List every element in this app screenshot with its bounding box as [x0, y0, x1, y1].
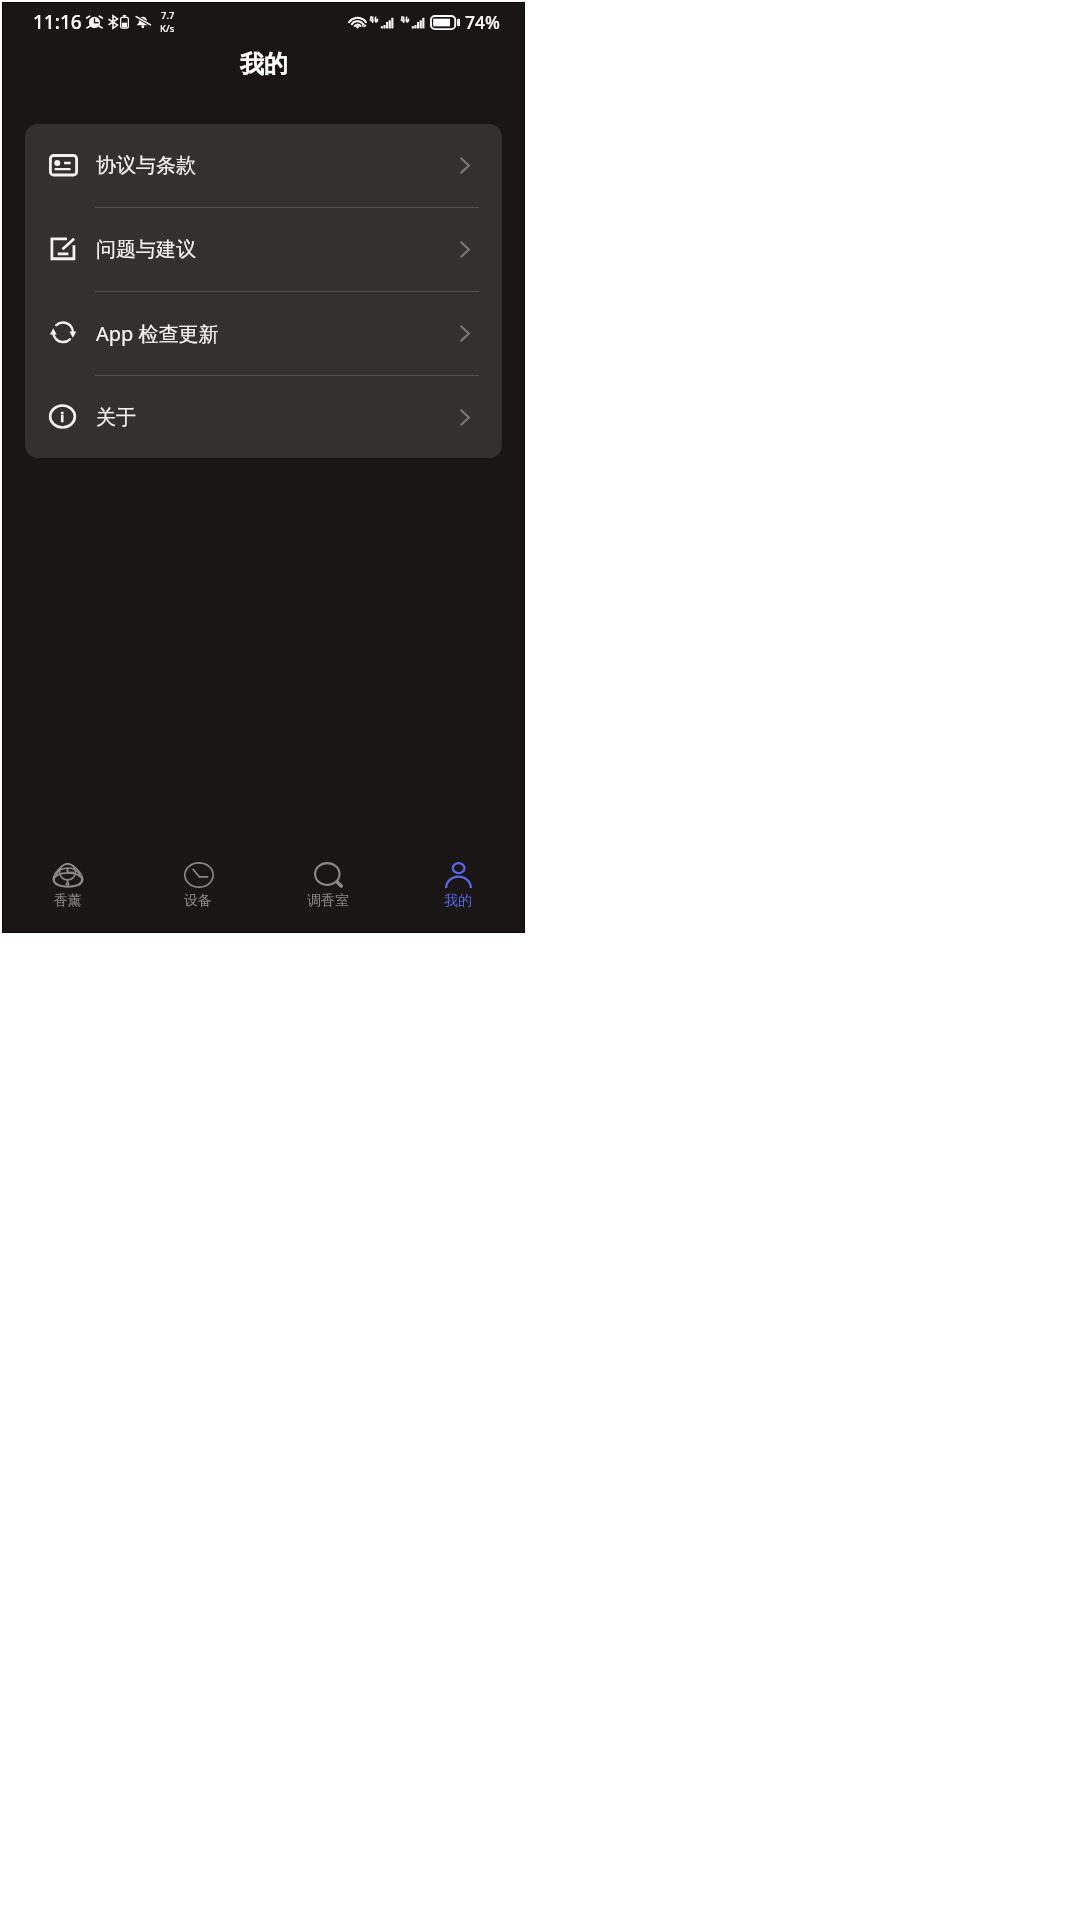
staticText: 74%	[465, 10, 500, 34]
staticText: 调香室	[307, 892, 349, 910]
button[interactable]: 关于	[25, 376, 502, 458]
button[interactable]: 香薰	[2, 857, 133, 914]
button[interactable]: 问题与建议	[25, 208, 502, 291]
button[interactable]: 我的	[393, 857, 523, 914]
button[interactable]: 设备	[133, 857, 263, 914]
button[interactable]: 调香室	[263, 857, 393, 914]
staticText: 关于	[96, 405, 136, 430]
staticText: 我的	[444, 892, 472, 910]
staticText: 协议与条款	[96, 153, 196, 178]
button[interactable]: App 检查更新	[25, 292, 502, 375]
staticText: 设备	[184, 892, 212, 910]
staticText: 我的	[240, 49, 288, 79]
staticText: 问题与建议	[96, 237, 196, 262]
staticText: 11:16	[33, 9, 82, 35]
staticText: App 检查更新	[96, 320, 219, 347]
staticText: 香薰	[54, 892, 82, 910]
staticText: K/s	[160, 22, 175, 35]
button[interactable]: 协议与条款	[25, 124, 502, 207]
staticText: 7.7	[161, 9, 175, 22]
